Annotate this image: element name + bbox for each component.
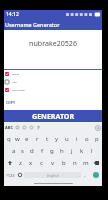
button[interactable]: ?123 (4, 169, 16, 181)
staticText: i (76, 135, 78, 143)
button[interactable]: Backspace (91, 157, 102, 169)
button[interactable]: z (15, 157, 25, 169)
staticText: o (85, 135, 89, 143)
button[interactable]: . (81, 169, 89, 181)
button[interactable]: Tool (29, 125, 34, 130)
staticText: 14:12 (6, 11, 19, 18)
button[interactable]: t (42, 133, 52, 145)
button[interactable]: Enter (89, 169, 102, 181)
button[interactable]: d (27, 145, 37, 157)
staticText: z (19, 159, 22, 167)
staticText: w (15, 135, 20, 143)
button[interactable]: k (77, 145, 87, 157)
button[interactable]: x (25, 157, 36, 169)
button[interactable]: q (4, 133, 13, 145)
button[interactable]: y (52, 133, 62, 145)
staticText: ?123 (6, 173, 15, 178)
button[interactable]: Female (4, 70, 102, 78)
button[interactable]: i (72, 133, 82, 145)
staticText: t (46, 135, 49, 143)
button[interactable]: Male (4, 78, 102, 86)
staticText: u (65, 135, 69, 143)
staticText: Male (12, 81, 17, 84)
staticText: h (60, 147, 64, 155)
button[interactable]: Tool (15, 125, 20, 130)
staticText: Username Generator (5, 21, 60, 28)
staticText: d (30, 147, 34, 155)
button[interactable]: GENERATOR (4, 110, 102, 122)
staticText: b (62, 159, 66, 167)
button[interactable]: With number (4, 86, 102, 94)
staticText: x (29, 159, 33, 167)
staticText: GENERATOR (32, 111, 75, 121)
button[interactable]: Tool (22, 125, 27, 130)
staticText: English (47, 173, 59, 178)
staticText: c (40, 159, 43, 167)
button[interactable]: j (67, 145, 77, 157)
staticText: q (7, 135, 11, 143)
button[interactable]: m (80, 157, 91, 169)
staticText: r (36, 135, 39, 143)
button[interactable]: c (36, 157, 47, 169)
staticText: s (21, 147, 24, 155)
button[interactable]: Tool (36, 125, 41, 130)
staticText: nubrake20526 (29, 38, 77, 46)
button[interactable]: f (37, 145, 47, 157)
staticText: a (12, 147, 16, 155)
staticText: v (51, 159, 55, 167)
button[interactable]: g (47, 145, 57, 157)
staticText: COPY (6, 100, 16, 105)
staticText: m (83, 159, 89, 167)
staticText: j (71, 147, 73, 155)
button[interactable]: s (18, 145, 27, 157)
button[interactable]: Settings (95, 125, 101, 131)
staticText: p (95, 135, 99, 143)
staticText: l (91, 147, 93, 155)
staticText: g (50, 147, 54, 155)
button[interactable]: l (87, 145, 97, 157)
button[interactable]: e (22, 133, 32, 145)
staticText: With number (12, 89, 25, 92)
button[interactable]: Space (24, 172, 81, 178)
button[interactable]: w (13, 133, 22, 145)
staticText: f (41, 147, 44, 155)
staticText: k (80, 147, 84, 155)
staticText: e (25, 135, 29, 143)
staticText: . (84, 171, 86, 179)
button[interactable]: v (47, 157, 58, 169)
button[interactable]: Shift (4, 157, 15, 169)
staticText: Female (12, 73, 20, 76)
staticText: ABC (5, 125, 13, 130)
button[interactable]: u (62, 133, 72, 145)
button[interactable]: Emoji (16, 169, 24, 181)
button[interactable]: p (92, 133, 102, 145)
button[interactable]: h (57, 145, 67, 157)
staticText: y (55, 135, 59, 143)
button[interactable]: o (82, 133, 92, 145)
button[interactable]: r (32, 133, 42, 145)
button[interactable]: n (69, 157, 80, 169)
button[interactable]: a (9, 145, 18, 157)
button[interactable]: b (58, 157, 69, 169)
staticText: n (73, 159, 77, 167)
button[interactable]: COPY (6, 98, 20, 106)
